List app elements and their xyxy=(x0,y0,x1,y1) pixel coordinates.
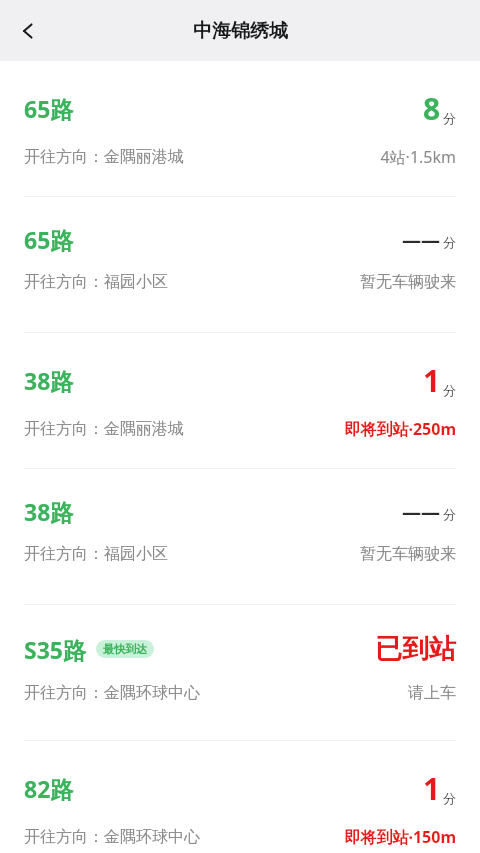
staticText: 8 xyxy=(423,88,441,129)
staticText: 38路 xyxy=(24,496,74,527)
staticText: 中海锦绣城 xyxy=(193,19,288,43)
button[interactable]: 65路 xyxy=(0,197,480,332)
staticText: 开往方向：福园小区 xyxy=(24,544,168,564)
staticText: 分 xyxy=(443,382,456,398)
staticText: 开往方向：金隅环球中心 xyxy=(24,683,200,703)
staticText: 4站·1.5km xyxy=(380,146,456,168)
button[interactable]: Back xyxy=(6,9,50,53)
staticText: 开往方向：金隅丽港城 xyxy=(24,147,184,167)
staticText: 请上车 xyxy=(408,683,456,703)
staticText: 分 xyxy=(443,234,456,250)
staticText: 分 xyxy=(443,110,456,126)
staticText: —— xyxy=(402,499,441,525)
staticText: —— xyxy=(402,227,441,253)
button[interactable]: 38路 xyxy=(0,469,480,604)
staticText: 即将到站·150m xyxy=(344,826,456,848)
staticText: 分 xyxy=(443,506,456,522)
staticText: 38路 xyxy=(24,365,74,396)
staticText: 开往方向：福园小区 xyxy=(24,272,168,292)
button[interactable]: 38路 xyxy=(0,333,480,468)
button[interactable]: S35路 xyxy=(0,605,480,740)
button[interactable]: 82路 xyxy=(0,741,480,853)
staticText: 65路 xyxy=(24,224,74,255)
staticText: 65路 xyxy=(24,93,74,124)
staticText: S35路 xyxy=(24,634,86,665)
staticText: 开往方向：金隅环球中心 xyxy=(24,827,200,847)
staticText: 1 xyxy=(423,768,441,809)
staticText: 最快到达 xyxy=(103,642,147,656)
staticText: 分 xyxy=(443,790,456,806)
staticText: 暂无车辆驶来 xyxy=(360,272,456,292)
staticText: 即将到站·250m xyxy=(344,418,456,440)
staticText: 暂无车辆驶来 xyxy=(360,544,456,564)
staticText: 已到站 xyxy=(375,632,456,666)
staticText: 开往方向：金隅丽港城 xyxy=(24,419,184,439)
staticText: 1 xyxy=(423,360,441,401)
staticText: 82路 xyxy=(24,773,74,804)
button[interactable]: 65路 xyxy=(0,61,480,196)
